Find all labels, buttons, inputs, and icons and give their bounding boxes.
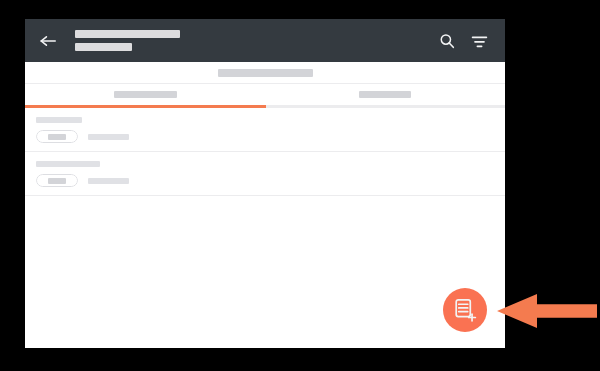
button[interactable]: Back <box>35 28 61 54</box>
button[interactable] <box>25 84 265 105</box>
button[interactable]: Search <box>434 28 460 54</box>
button[interactable] <box>25 108 505 152</box>
button[interactable]: Create note <box>443 288 487 332</box>
button[interactable] <box>265 84 505 105</box>
button[interactable] <box>36 174 78 187</box>
button[interactable] <box>36 130 78 143</box>
button[interactable]: Filter <box>466 28 492 54</box>
button[interactable] <box>25 152 505 196</box>
